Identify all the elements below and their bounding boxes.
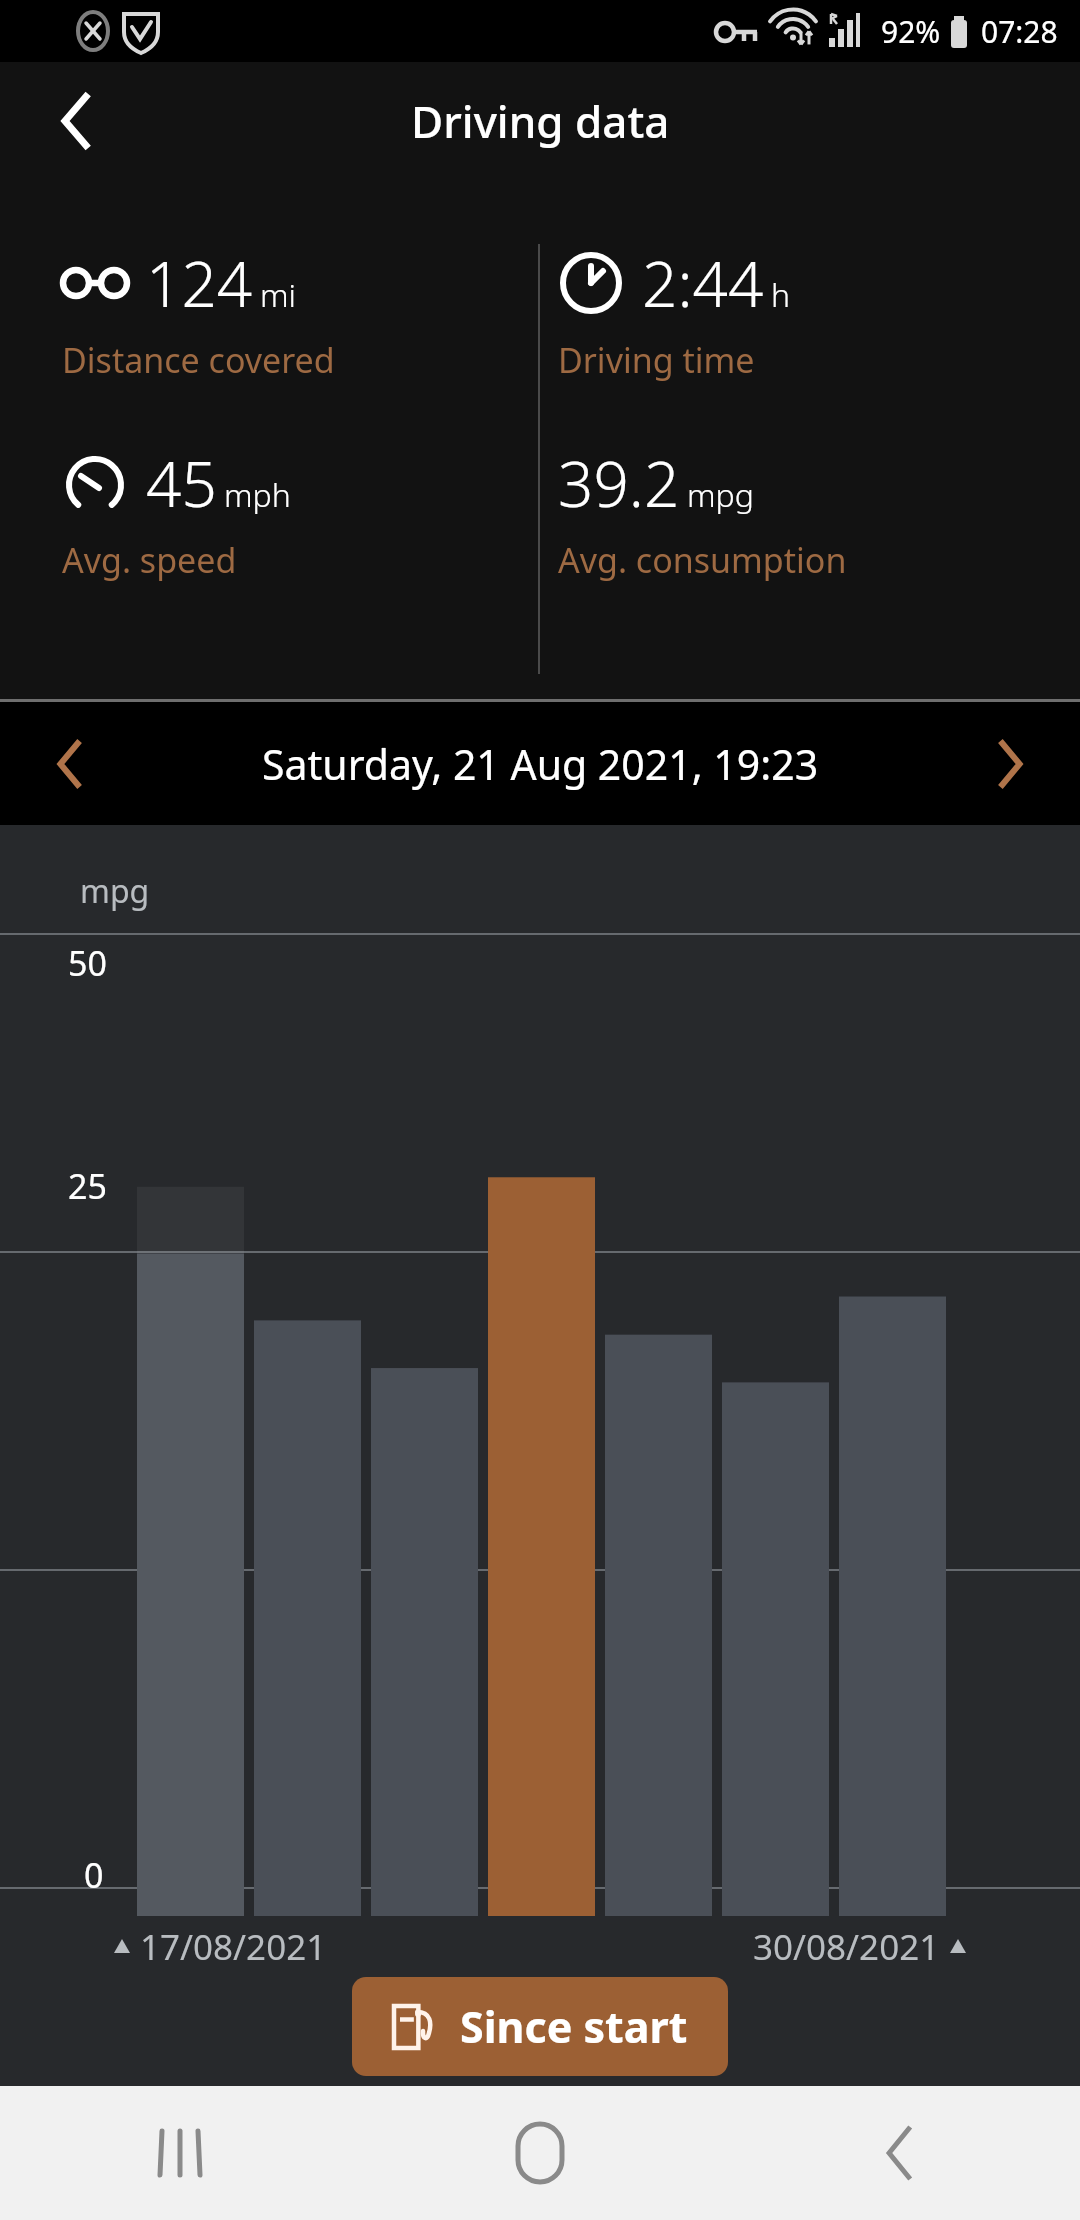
staticText: Driving data [411,91,670,151]
staticText: 2:44 [642,241,764,325]
button[interactable]: Back [34,78,120,164]
button[interactable]: 124 [0,179,540,383]
staticText: Since start [460,1997,688,2056]
staticText: 45 [146,441,217,525]
button[interactable]: 2:44 [540,179,1080,383]
button[interactable]: Home [360,2086,720,2220]
staticText: mi [260,273,297,317]
staticText: 92% [881,11,941,52]
staticText: 25 [68,1163,107,1209]
staticText: 50 [68,940,107,986]
staticText: 30/08/2021 [753,1923,940,1971]
staticText: mph [224,473,291,517]
button[interactable]: Since start [352,1977,728,2076]
button[interactable]: 39.2 [540,383,1080,583]
staticText: 0 [84,1852,104,1898]
button[interactable]: Previous day [20,709,120,819]
staticText: h [771,273,791,317]
staticText: 07:28 [981,11,1058,52]
staticText: Avg. speed [62,537,237,583]
button[interactable]: Next day [960,709,1060,819]
staticText: Driving time [558,337,755,383]
staticText: Avg. consumption [558,537,847,583]
staticText: Distance covered [62,337,335,383]
button[interactable]: Recent apps [0,2086,360,2220]
staticText: mpg [687,473,754,517]
staticText: 17/08/2021 [140,1923,327,1971]
staticText: 124 [146,241,253,325]
staticText: mpg [80,869,150,913]
staticText: Saturday, 21 Aug 2021, 19:23 [262,736,819,792]
staticText: 39.2 [558,441,680,525]
button[interactable]: 45 [0,383,540,583]
button[interactable]: Back [720,2086,1080,2220]
